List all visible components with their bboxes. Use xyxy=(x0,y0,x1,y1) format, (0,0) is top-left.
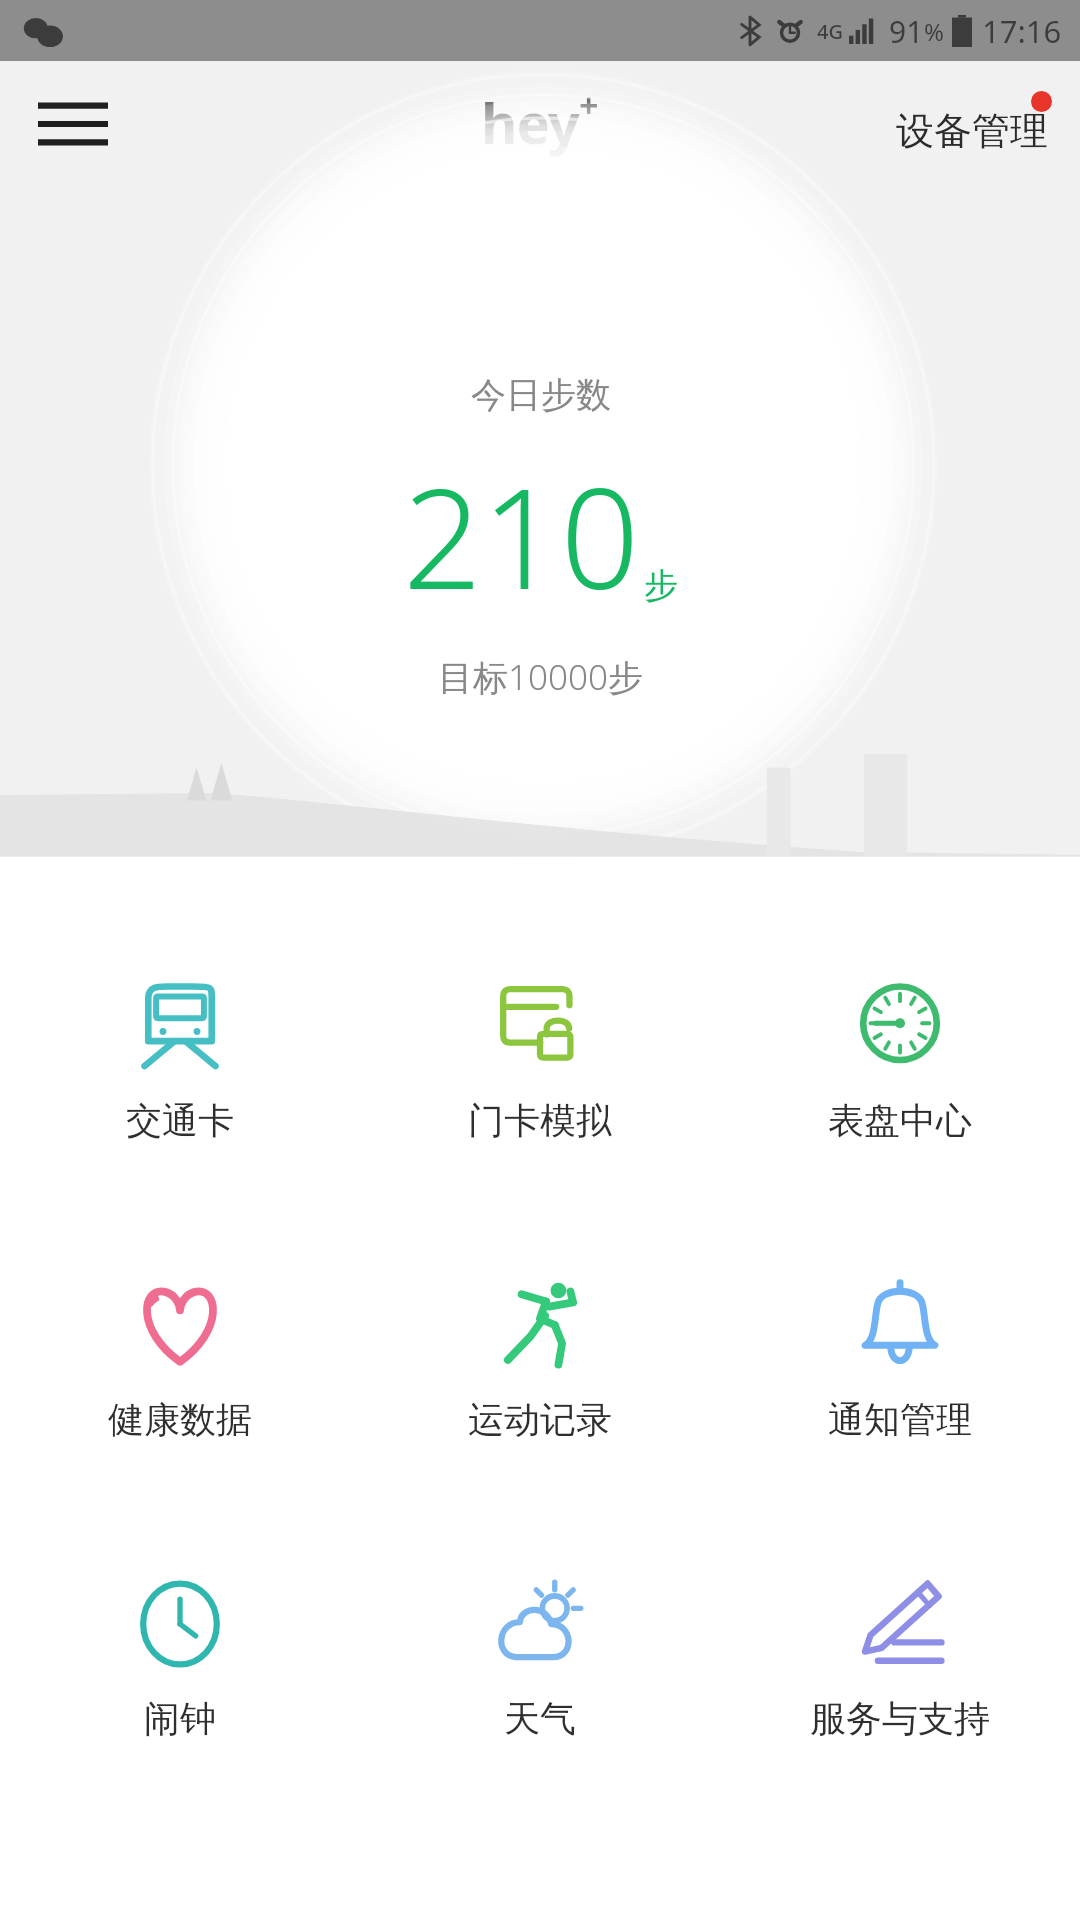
button[interactable]: 门卡模拟 xyxy=(360,974,720,1149)
staticText: 运动记录 xyxy=(468,1397,612,1442)
button[interactable]: 设备管理 xyxy=(896,93,1054,155)
staticText: 门卡模拟 xyxy=(468,1098,612,1143)
staticText: 步 xyxy=(644,564,678,607)
staticText: 210 xyxy=(403,441,640,629)
staticText: % xyxy=(924,15,944,48)
staticText: 天气 xyxy=(504,1696,576,1741)
staticText: 交通卡 xyxy=(126,1098,234,1143)
button[interactable]: 通知管理 xyxy=(720,1273,1080,1448)
staticText: 17:16 xyxy=(982,10,1062,52)
staticText: 设备管理 xyxy=(896,107,1048,155)
staticText: hey xyxy=(481,84,579,160)
staticText: 表盘中心 xyxy=(828,1098,972,1143)
staticText: 服务与支持 xyxy=(810,1696,990,1741)
staticText: 闹钟 xyxy=(144,1696,216,1741)
staticText: + xyxy=(579,82,599,128)
button[interactable]: 服务与支持 xyxy=(720,1572,1080,1747)
staticText: 今日步数 xyxy=(471,373,611,417)
staticText: 通知管理 xyxy=(828,1397,972,1442)
button[interactable]: 运动记录 xyxy=(360,1273,720,1448)
button[interactable]: 交通卡 xyxy=(0,974,360,1149)
button[interactable]: 表盘中心 xyxy=(720,974,1080,1149)
staticText: 目标10000步 xyxy=(438,653,643,701)
button[interactable]: 健康数据 xyxy=(0,1273,360,1448)
staticText: 4G xyxy=(817,18,843,45)
button[interactable]: 闹钟 xyxy=(0,1572,360,1747)
button[interactable]: 天气 xyxy=(360,1572,720,1747)
button[interactable]: Menu xyxy=(28,86,118,162)
staticText: 91 xyxy=(889,11,924,52)
staticText: 健康数据 xyxy=(108,1397,252,1442)
